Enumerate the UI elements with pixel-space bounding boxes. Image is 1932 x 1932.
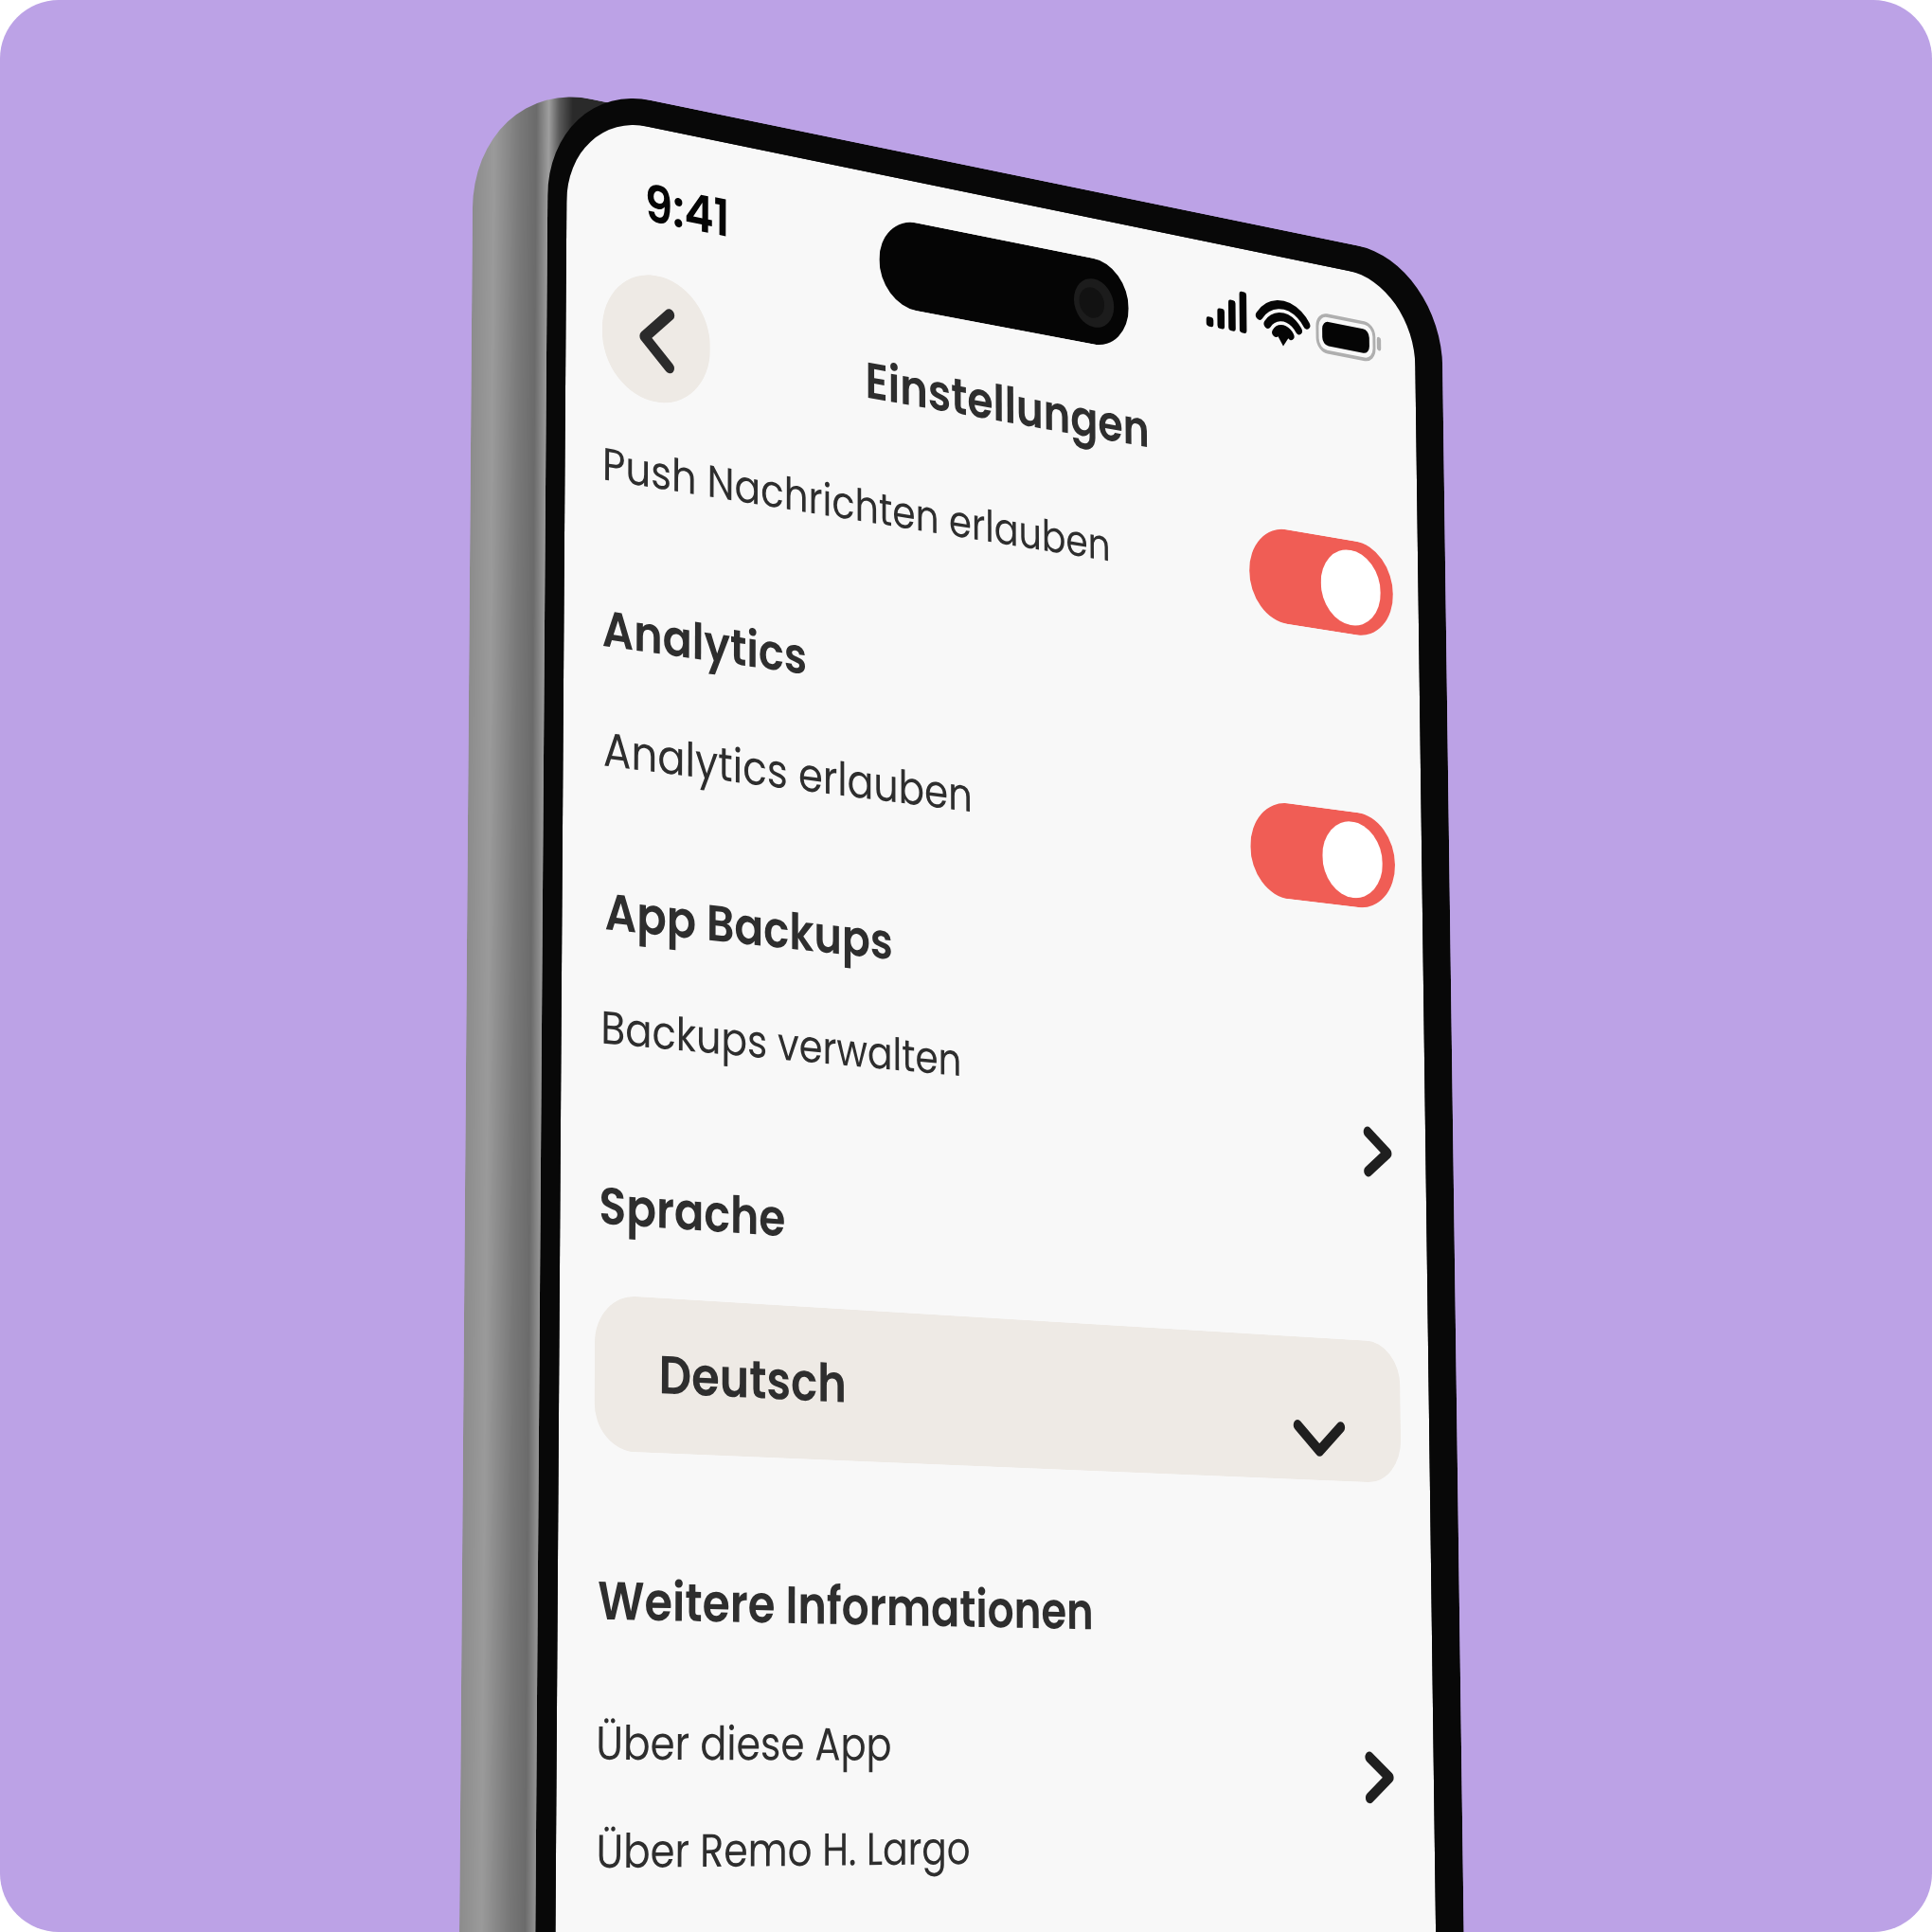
staticText: Analytics erlauben [603,716,973,829]
staticText: 9:41 [644,167,730,255]
staticText: Analytics [602,592,807,691]
staticText: Push Nachrichten erlauben [602,431,1111,576]
staticText: App Backups [605,875,893,977]
staticText: Einstellungen [865,344,1150,465]
staticText: Weitere Informationen [597,1563,1094,1646]
staticText: Über Remo H. Largo [596,1816,970,1884]
button[interactable]: Open [1358,1119,1398,1186]
button[interactable]: Back [602,266,710,411]
staticText: Backups verwalten [601,995,962,1092]
staticText: Deutsch [659,1337,847,1421]
button[interactable]: Toggle [1249,523,1394,641]
staticText: Sprache [599,1169,786,1254]
button[interactable]: Toggle [1250,798,1396,912]
button[interactable]: Deutsch [594,1294,1401,1484]
button[interactable]: Open [1359,1745,1400,1810]
staticText: Über diese App [596,1710,892,1776]
